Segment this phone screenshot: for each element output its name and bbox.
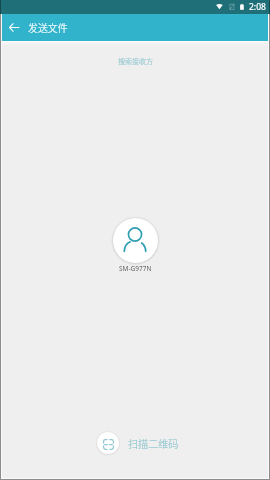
staticText: 发送文件 [28,21,68,35]
staticText: SM-G977N [119,264,152,273]
button[interactable]: 扫描二维码 [97,432,178,454]
staticText: 2:08 [249,1,266,13]
button[interactable]: Back [0,14,27,41]
staticText: 搜索接收方 [118,56,153,66]
staticText: 扫描二维码 [128,436,179,451]
button[interactable]: SM-G977N [113,218,158,273]
